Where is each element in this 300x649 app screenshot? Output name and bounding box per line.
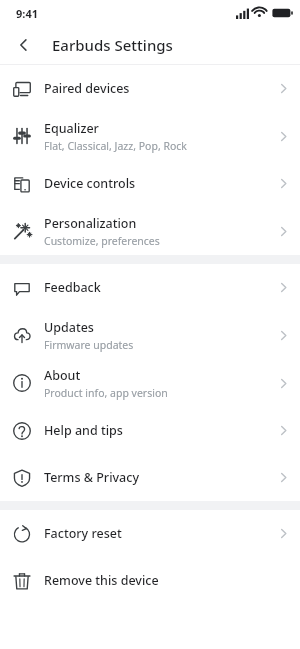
staticText: Remove this device — [44, 572, 159, 589]
button[interactable]: Paired devices — [0, 65, 300, 112]
button[interactable]: Back — [8, 29, 40, 61]
staticText: Device controls — [44, 175, 136, 192]
staticText: Equalizer — [44, 120, 99, 137]
staticText: Paired devices — [44, 80, 130, 97]
staticText: Flat, Classical, Jazz, Pop, Rock — [44, 139, 187, 153]
staticText: Help and tips — [44, 422, 123, 439]
staticText: Customize, preferences — [44, 234, 160, 248]
staticText: 9:41 — [16, 6, 38, 21]
button[interactable]: Device controls — [0, 160, 300, 207]
staticText: Terms & Privacy — [44, 469, 140, 486]
button[interactable]: Updates — [0, 311, 300, 359]
staticText: Earbuds Settings — [52, 35, 173, 55]
staticText: Product info, app version — [44, 386, 168, 400]
button[interactable]: Equalizer — [0, 112, 300, 160]
staticText: Factory reset — [44, 525, 122, 542]
button[interactable]: Help and tips — [0, 407, 300, 454]
staticText: Firmware updates — [44, 338, 134, 352]
button[interactable]: Personalization — [0, 207, 300, 255]
staticText: Updates — [44, 319, 94, 336]
button[interactable]: Factory reset — [0, 510, 300, 557]
staticText: About — [44, 367, 81, 384]
button[interactable]: About — [0, 359, 300, 407]
staticText: Personalization — [44, 215, 137, 232]
button[interactable]: Feedback — [0, 264, 300, 311]
staticText: Feedback — [44, 279, 101, 296]
button[interactable]: Terms & Privacy — [0, 454, 300, 501]
button[interactable]: Remove this device — [0, 557, 300, 604]
